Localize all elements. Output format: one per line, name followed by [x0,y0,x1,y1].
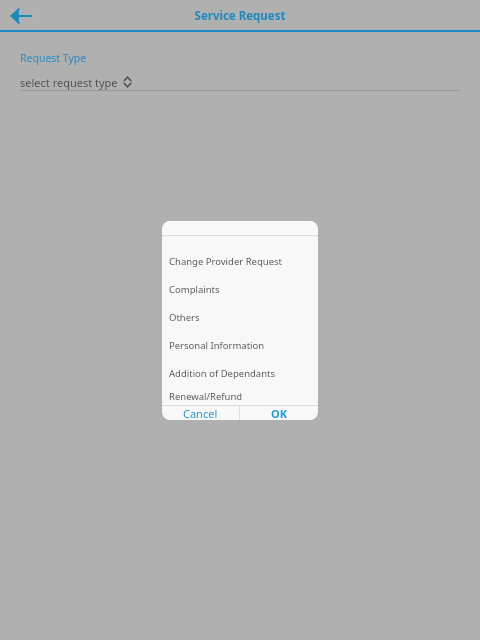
staticText: Service Request [0,8,480,24]
button[interactable]: Others [162,303,318,331]
button[interactable]: OK [240,406,318,420]
staticText: Request Type [20,51,87,65]
button[interactable]: Complaints [162,275,318,303]
button[interactable]: select request type [20,72,460,92]
staticText: Change Provider Request [169,255,282,268]
staticText: OK [271,406,288,420]
staticText: Personal Information [169,339,265,352]
staticText: Others [169,311,200,324]
button[interactable]: Change Provider Request [162,247,318,275]
button[interactable]: Personal Information [162,331,318,359]
staticText: Addition of Dependants [169,367,276,380]
button[interactable]: Renewal/Refund [162,387,318,405]
button[interactable]: Cancel [162,406,239,420]
button[interactable]: Back [4,3,38,29]
button[interactable]: Addition of Dependants [162,359,318,387]
staticText: Cancel [183,406,218,420]
staticText: Complaints [169,283,220,296]
staticText: select request type [20,75,118,90]
staticText: Renewal/Refund [169,390,243,403]
